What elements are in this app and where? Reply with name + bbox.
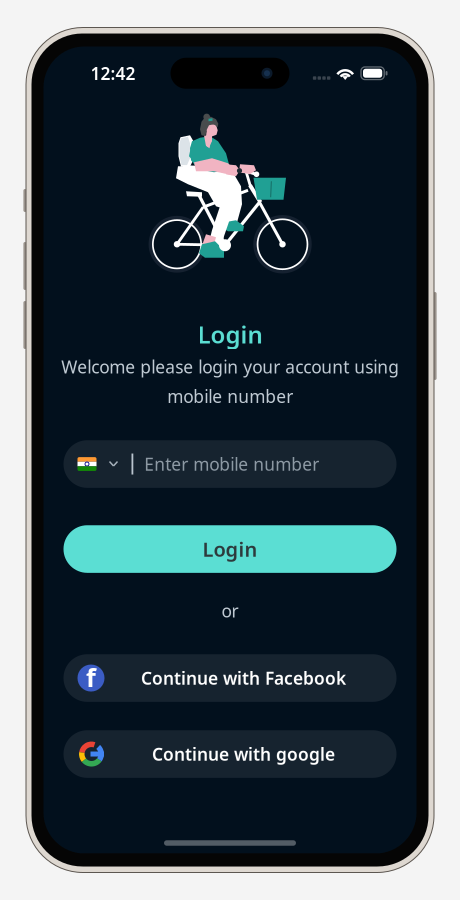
staticText: Login (202, 536, 257, 562)
staticText: or (221, 599, 238, 622)
staticText: Welcome please login your account using … (61, 355, 399, 408)
staticText: Continue with google (152, 742, 335, 765)
button[interactable]: Login (63, 525, 396, 573)
staticText: Login (197, 318, 262, 350)
button[interactable]: f (63, 654, 396, 702)
staticText: 12:42 (90, 62, 135, 85)
staticText: Continue with Facebook (141, 666, 346, 689)
staticText: Enter mobile number (144, 452, 319, 475)
staticText: f (86, 660, 96, 694)
button[interactable]: Continue with google (63, 730, 396, 778)
